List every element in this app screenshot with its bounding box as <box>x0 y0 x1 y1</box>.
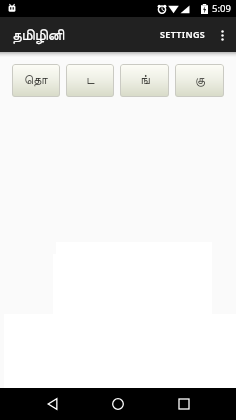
button[interactable]: Home <box>96 388 140 420</box>
button[interactable]: Recents <box>162 388 206 420</box>
staticText: ட <box>86 74 95 87</box>
staticText: SETTINGS <box>160 28 206 40</box>
button[interactable]: SETTINGS <box>152 21 208 49</box>
button[interactable]: More options <box>208 21 236 49</box>
button[interactable]: Back <box>31 388 75 420</box>
staticText: தொ <box>24 74 48 87</box>
staticText: ங் <box>140 74 150 87</box>
button[interactable]: ட <box>66 64 114 97</box>
button[interactable]: கு <box>175 64 224 97</box>
button[interactable]: தொ <box>12 64 60 97</box>
staticText: கு <box>195 74 205 87</box>
staticText: 5:09 <box>212 2 231 15</box>
button[interactable]: ங் <box>120 64 169 97</box>
staticText: தமிழினி <box>12 28 65 43</box>
